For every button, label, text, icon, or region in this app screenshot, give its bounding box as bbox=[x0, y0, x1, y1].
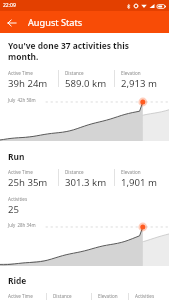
staticText: Elevation bbox=[121, 70, 141, 76]
staticText: 2,913 m bbox=[121, 77, 157, 90]
staticText: 1,901 m bbox=[121, 176, 157, 189]
staticText: July 28h 34m bbox=[8, 222, 36, 228]
staticText: Ride bbox=[8, 275, 27, 286]
staticText: Active Time bbox=[8, 293, 33, 299]
staticText: You've done 37 activities this month. bbox=[8, 40, 161, 62]
staticText: 25 bbox=[8, 203, 19, 216]
staticText: Activities bbox=[8, 196, 28, 202]
staticText: Distance bbox=[65, 70, 84, 76]
button[interactable]: Back bbox=[3, 14, 20, 31]
staticText: Activities bbox=[135, 293, 155, 299]
button[interactable]: July 28h 34m bbox=[0, 219, 169, 266]
staticText: 22:09 bbox=[3, 2, 16, 9]
staticText: July 42h 58m bbox=[8, 97, 36, 103]
staticText: August Stats bbox=[28, 16, 83, 29]
staticText: Active Time bbox=[8, 70, 33, 76]
staticText: Active Time bbox=[8, 169, 33, 175]
staticText: 25h 35m bbox=[8, 176, 48, 189]
staticText: Elevation bbox=[121, 169, 141, 175]
staticText: 39h 24m bbox=[8, 77, 48, 90]
staticText: Distance bbox=[53, 293, 72, 299]
staticText: Run bbox=[8, 151, 25, 162]
staticText: Distance bbox=[65, 169, 84, 175]
staticText: Elevation bbox=[98, 293, 118, 299]
button[interactable]: July 42h 58m bbox=[0, 94, 169, 141]
staticText: 589.0 km bbox=[65, 77, 107, 90]
staticText: 301.3 km bbox=[65, 176, 107, 189]
